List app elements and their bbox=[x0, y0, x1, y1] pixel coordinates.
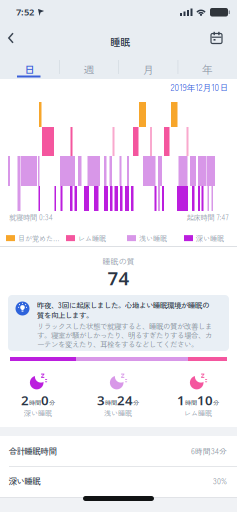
button[interactable]: 合計睡眠時間 bbox=[0, 436, 237, 466]
staticText: 目が覚めた… bbox=[18, 233, 60, 243]
button[interactable]: Back bbox=[0, 0, 24, 26]
staticText: 1 bbox=[177, 391, 185, 409]
staticText: リラックスした状態で就寝すると、睡眠の質が改善しま bbox=[37, 320, 212, 331]
staticText: 起床時間 7:47 bbox=[186, 212, 228, 222]
staticText: 浅い睡眠 bbox=[104, 408, 132, 418]
staticText: 3 bbox=[97, 391, 105, 409]
staticText: 24 bbox=[117, 391, 133, 409]
button[interactable]: 深い睡眠 bbox=[0, 466, 237, 496]
staticText: 2 bbox=[21, 391, 29, 409]
staticText: 質を向上します。 bbox=[37, 309, 93, 320]
staticText: 時間 bbox=[105, 398, 117, 407]
staticText: 睡眠 bbox=[110, 34, 130, 49]
button[interactable]: 週 bbox=[59, 57, 118, 81]
staticText: 0 bbox=[41, 391, 49, 409]
staticText: 年 bbox=[202, 61, 213, 77]
staticText: 10 bbox=[197, 391, 213, 409]
staticText: 7:52 bbox=[16, 6, 34, 18]
staticText: レム睡眠 bbox=[184, 408, 212, 418]
staticText: 日 bbox=[24, 61, 35, 77]
staticText: ーテンを変えたり、耳栓をするなどしてください。 bbox=[37, 338, 198, 349]
staticText: 就寝時間 0:34 bbox=[9, 212, 53, 222]
staticText: 30% bbox=[213, 475, 227, 487]
button[interactable]: Calendar bbox=[0, 0, 22, 22]
staticText: 分 bbox=[49, 398, 55, 407]
button[interactable]: 日 bbox=[0, 57, 59, 81]
staticText: 週 bbox=[83, 61, 94, 77]
staticText: 分 bbox=[213, 398, 219, 407]
button[interactable]: 年 bbox=[178, 57, 237, 81]
staticText: 分 bbox=[133, 398, 139, 407]
staticText: 合計睡眠時間 bbox=[8, 445, 56, 457]
staticText: 月 bbox=[143, 61, 154, 77]
staticText: 深い睡眠 bbox=[8, 475, 40, 487]
staticText: 浅い睡眠 bbox=[139, 233, 167, 243]
staticText: 2019年12月10日 bbox=[170, 80, 228, 93]
staticText: 昨夜、3回に起床しました。心地よい睡眠環境が睡眠の bbox=[37, 299, 209, 310]
staticText: 時間 bbox=[185, 398, 197, 407]
staticText: 74 bbox=[107, 266, 129, 290]
staticText: 時間 bbox=[29, 398, 41, 407]
staticText: す。寝室が騒がしかったり、明るすぎたりする場合、カ bbox=[37, 329, 212, 340]
staticText: レム睡眠 bbox=[78, 233, 106, 243]
button[interactable]: 月 bbox=[118, 57, 178, 81]
staticText: 深い睡眠 bbox=[196, 233, 224, 243]
staticText: 深い睡眠 bbox=[24, 408, 52, 418]
staticText: 6時間34分 bbox=[191, 445, 227, 457]
staticText: 睡眠の質 bbox=[102, 255, 134, 267]
